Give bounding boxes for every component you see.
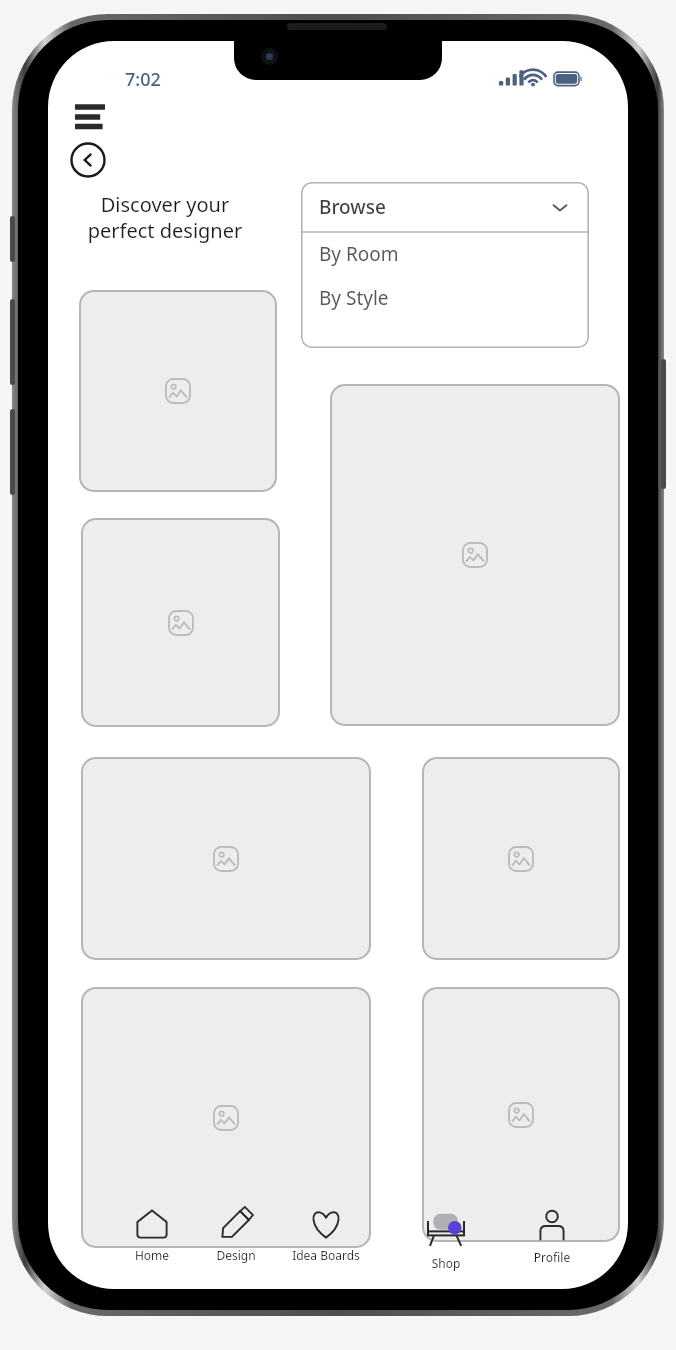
button[interactable] (422, 757, 620, 960)
button[interactable]: Back (70, 142, 106, 178)
staticText: Shop (404, 1255, 488, 1271)
button[interactable]: Menu (68, 95, 112, 139)
button[interactable] (422, 987, 620, 1242)
button[interactable] (79, 290, 277, 492)
staticText: Discover your perfect designer (65, 191, 265, 243)
staticText: Design (194, 1247, 278, 1263)
button[interactable]: Shop (404, 1207, 488, 1273)
staticText: Profile (510, 1249, 594, 1265)
button[interactable] (330, 384, 620, 726)
button[interactable] (81, 757, 371, 960)
staticText: Idea Boards (284, 1247, 368, 1263)
button[interactable]: Home (110, 1205, 194, 1265)
button[interactable] (81, 518, 280, 727)
staticText: By Room (319, 241, 399, 267)
staticText: By Style (319, 285, 389, 311)
button[interactable] (81, 987, 371, 1248)
button[interactable]: Browse (301, 182, 589, 232)
staticText: Home (110, 1247, 194, 1263)
staticText: Browse (319, 194, 386, 220)
button[interactable]: By Room (301, 232, 589, 276)
button[interactable]: Design (194, 1205, 278, 1265)
button[interactable]: Idea Boards (284, 1205, 368, 1265)
button[interactable]: By Style (301, 276, 589, 320)
staticText: 7:02 (125, 67, 161, 92)
button[interactable]: Profile (510, 1207, 594, 1267)
